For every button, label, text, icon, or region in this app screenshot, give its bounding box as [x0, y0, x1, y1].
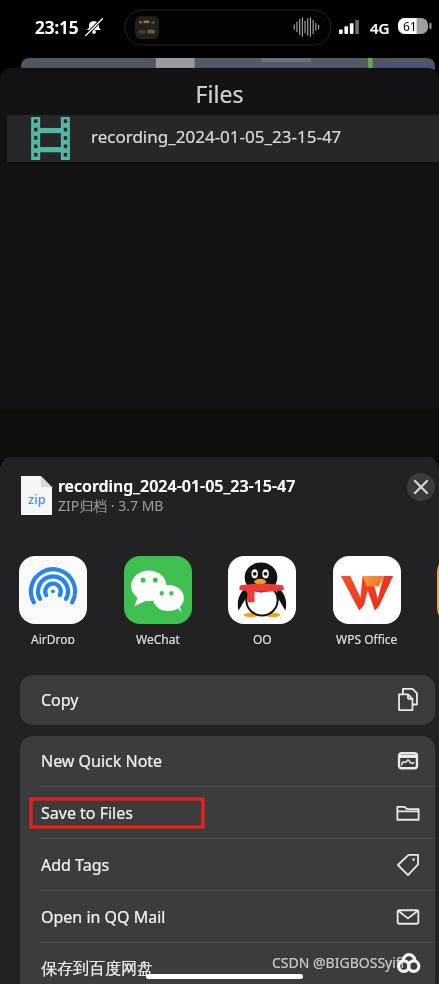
- button[interactable]: Copy: [20, 675, 435, 725]
- staticText: WPS Office: [336, 631, 398, 644]
- button[interactable]: More apps: [437, 556, 439, 624]
- staticText: WeChat: [136, 631, 180, 644]
- button[interactable]: AirDrop: [1, 556, 105, 644]
- staticText: 61: [403, 18, 417, 34]
- staticText: CSDN @BIGBOSSyifi: [272, 953, 405, 972]
- button[interactable]: Add Tags: [20, 839, 435, 890]
- staticText: 23:15: [35, 16, 79, 39]
- button[interactable]: Open in QQ Mail: [20, 891, 435, 942]
- staticText: 保存到百度网盘: [41, 959, 153, 979]
- staticText: zip: [28, 490, 46, 508]
- staticText: Open in QQ Mail: [41, 906, 166, 928]
- staticText: Copy: [41, 689, 79, 711]
- staticText: 4G: [370, 18, 390, 38]
- staticText: AirDrop: [31, 631, 75, 644]
- button[interactable]: WeChat: [106, 556, 210, 644]
- button[interactable]: Save to Files: [20, 787, 435, 838]
- button[interactable]: Close: [407, 473, 435, 501]
- staticText: Files: [0, 78, 439, 109]
- button[interactable]: New Quick Note: [20, 736, 435, 786]
- staticText: QQ: [253, 631, 272, 644]
- staticText: Save to Files: [41, 802, 133, 824]
- button[interactable]: QQ: [210, 556, 314, 644]
- button[interactable]: WPS Office: [315, 556, 419, 644]
- staticText: recording_2024-01-05_23-15-47: [58, 475, 296, 497]
- staticText: recording_2024-01-05_23-15-47: [91, 125, 342, 148]
- staticText: Add Tags: [41, 854, 110, 876]
- staticText: ZIP归档 · 3.7 MB: [58, 496, 164, 515]
- button[interactable]: 保存到百度网盘: [20, 943, 435, 984]
- staticText: New Quick Note: [41, 750, 163, 772]
